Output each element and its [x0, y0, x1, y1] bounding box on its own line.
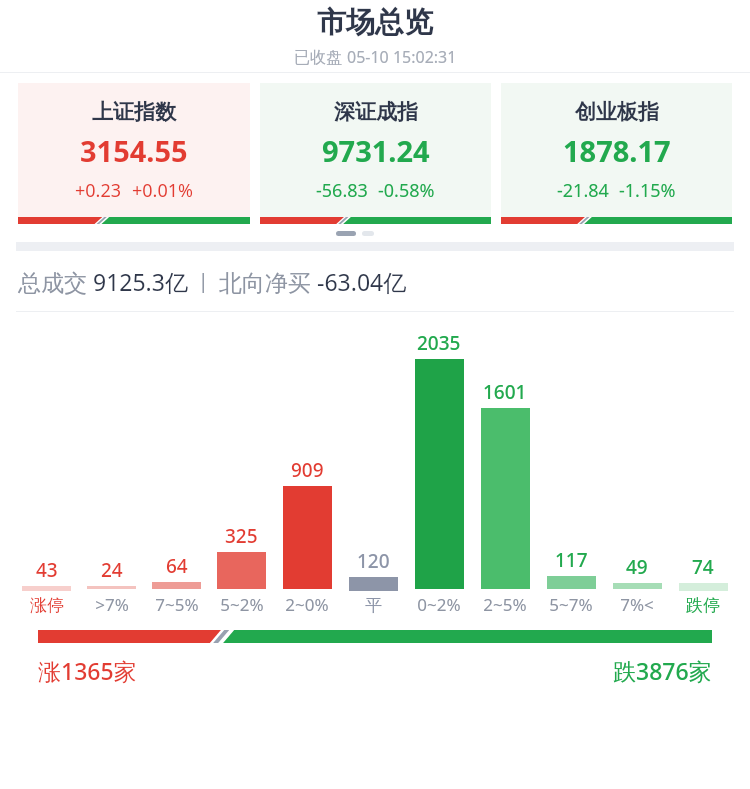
staticText: 05-10 15:02:31 [347, 46, 457, 68]
staticText: 涨1365家 [38, 655, 137, 686]
button[interactable]: 117 [538, 330, 604, 616]
staticText: 49 [626, 554, 648, 580]
staticText: 5~2% [220, 593, 264, 616]
staticText: 24 [101, 557, 123, 583]
button[interactable]: 深证成指 [260, 83, 491, 224]
staticText: 5~7% [549, 593, 593, 616]
button[interactable]: 1601 [472, 330, 538, 616]
staticText: 上证指数 [92, 99, 176, 125]
staticText: 7~5% [155, 593, 199, 616]
staticText: +0.01% [132, 178, 193, 203]
button[interactable]: 上证指数 [18, 83, 250, 224]
staticText: -0.58% [378, 178, 435, 203]
staticText: 325 [225, 523, 258, 549]
staticText: +0.23 [75, 178, 122, 203]
staticText: 74 [692, 554, 714, 580]
button[interactable]: 创业板指 [501, 83, 732, 224]
button[interactable]: 64 [144, 330, 209, 616]
staticText: 市场总览 [317, 4, 433, 41]
button[interactable]: 2035 [406, 330, 472, 616]
staticText: 9125.3亿 [93, 266, 188, 297]
staticText: -21.84 [557, 178, 609, 203]
staticText: 已收盘 [294, 46, 347, 68]
staticText: 1878.17 [563, 131, 671, 170]
staticText: 1601 [483, 379, 527, 405]
staticText: 创业板指 [575, 99, 659, 125]
staticText: 跌停 [686, 595, 720, 616]
staticText: 总成交 [18, 266, 93, 297]
staticText: 43 [36, 557, 58, 583]
button[interactable]: 120 [340, 332, 406, 616]
staticText: | [188, 268, 219, 294]
staticText: 0~2% [417, 593, 461, 616]
staticText: 涨停 [30, 595, 64, 616]
button[interactable]: 325 [209, 330, 274, 616]
staticText: 7%< [620, 593, 654, 616]
staticText: 北向净买 [219, 266, 317, 297]
staticText: 跌3876家 [613, 655, 712, 686]
staticText: 120 [357, 548, 390, 574]
staticText: -63.04亿 [317, 266, 407, 297]
button[interactable]: 49 [604, 330, 670, 616]
staticText: 3154.55 [80, 131, 188, 170]
staticText: -1.15% [619, 178, 676, 203]
staticText: 9731.24 [322, 131, 430, 170]
button[interactable]: 74 [670, 332, 736, 616]
staticText: 2035 [417, 330, 461, 356]
staticText: -56.83 [316, 178, 368, 203]
staticText: 117 [555, 547, 588, 573]
button[interactable]: 43 [14, 332, 79, 616]
staticText: 909 [291, 457, 324, 483]
staticText: 深证成指 [334, 99, 418, 125]
staticText: >7% [95, 593, 129, 616]
staticText: 64 [166, 553, 188, 579]
staticText: 2~5% [483, 593, 527, 616]
button[interactable]: 24 [79, 330, 144, 616]
staticText: 2~0% [285, 593, 329, 616]
button[interactable]: 909 [274, 330, 340, 616]
staticText: 平 [365, 595, 382, 616]
